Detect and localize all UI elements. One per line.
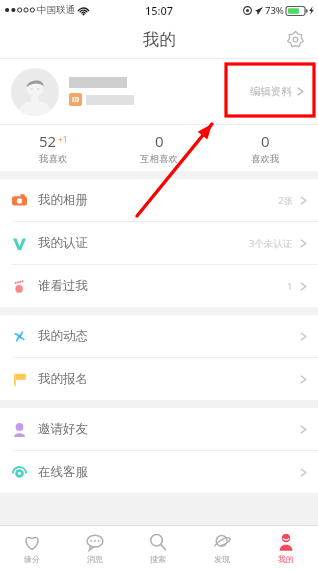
button[interactable]: 我的报名 bbox=[0, 358, 318, 400]
staticText: 52 bbox=[39, 131, 57, 151]
staticText: 我的 bbox=[143, 29, 176, 50]
staticText: 我喜欢 bbox=[39, 153, 68, 165]
button[interactable]: 在线客服 bbox=[0, 451, 318, 493]
staticText: 我的动态 bbox=[38, 328, 88, 344]
staticText: 消息 bbox=[87, 554, 103, 564]
staticText: 0 bbox=[261, 131, 270, 151]
staticText: 我的认证 bbox=[38, 235, 88, 251]
staticText: 邀请好友 bbox=[38, 421, 88, 437]
staticText: 中国联通 bbox=[37, 4, 75, 16]
button[interactable]: 消息 bbox=[63, 526, 126, 570]
button[interactable]: 0 bbox=[106, 125, 212, 171]
button[interactable]: 编辑资料 bbox=[244, 79, 307, 104]
button[interactable]: 缘分 bbox=[0, 526, 63, 570]
staticText: 编辑资料 bbox=[250, 85, 292, 98]
staticText: 0 bbox=[155, 131, 164, 151]
staticText: 搜索 bbox=[150, 554, 166, 564]
staticText: 发现 bbox=[214, 554, 230, 564]
button[interactable]: 我的相册 bbox=[0, 179, 318, 221]
staticText: 缘分 bbox=[24, 554, 40, 564]
staticText: 1 bbox=[287, 280, 293, 293]
staticText: ID bbox=[72, 95, 80, 104]
button[interactable]: 我的动态 bbox=[0, 315, 318, 357]
staticText: 我的 bbox=[278, 554, 294, 564]
staticText: 我的相册 bbox=[38, 192, 88, 208]
staticText: 2张 bbox=[278, 194, 293, 207]
staticText: 谁看过我 bbox=[38, 278, 88, 294]
staticText: 15:07 bbox=[145, 3, 174, 18]
staticText: +1 bbox=[58, 134, 68, 146]
button[interactable]: 邀请好友 bbox=[0, 408, 318, 450]
button[interactable]: 0 bbox=[212, 125, 318, 171]
button[interactable]: 谁看过我 bbox=[0, 265, 318, 307]
button[interactable]: Settings bbox=[280, 24, 310, 54]
staticText: 喜欢我 bbox=[251, 153, 280, 165]
staticText: 在线客服 bbox=[38, 464, 88, 480]
button[interactable]: 52 bbox=[0, 125, 106, 171]
button[interactable]: 搜索 bbox=[126, 526, 190, 570]
staticText: 互相喜欢 bbox=[140, 153, 178, 165]
staticText: 73% bbox=[265, 4, 284, 17]
staticText: 我的报名 bbox=[38, 371, 88, 387]
button[interactable]: 我的 bbox=[254, 526, 318, 570]
button[interactable]: ID bbox=[0, 59, 318, 124]
staticText: 3个未认证 bbox=[249, 237, 293, 250]
button[interactable]: 我的认证 bbox=[0, 222, 318, 264]
button[interactable]: 发现 bbox=[190, 526, 254, 570]
